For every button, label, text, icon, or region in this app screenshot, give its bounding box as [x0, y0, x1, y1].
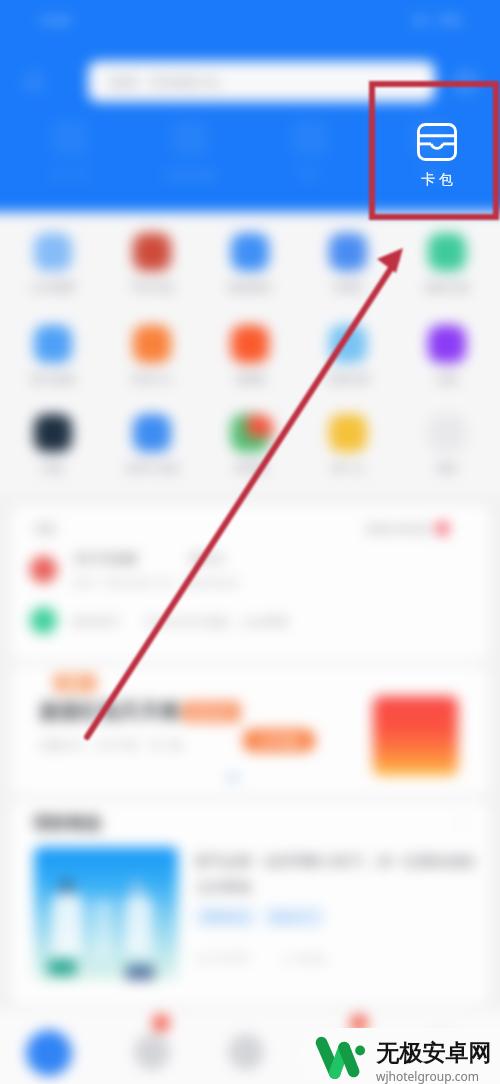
staticText: 饿了么 [332, 461, 365, 475]
staticText: 新手必看！这些理财小技巧，你一定要知道的几件事项 [195, 853, 475, 897]
staticText: 搜索 扫码领红包 [88, 72, 219, 91]
staticText: 无极安卓网 [376, 1039, 491, 1068]
staticText: 转账 [42, 461, 64, 475]
staticText: 手机充值 [130, 280, 174, 294]
staticText: 5G 70% [412, 11, 462, 29]
button[interactable]: 淘票票 [205, 414, 295, 475]
button[interactable]: 信用卡还款 [107, 414, 197, 475]
button[interactable]: 蚂蚁森林 [205, 233, 295, 294]
button[interactable]: Menu [22, 70, 46, 94]
staticText: 信用卡还款 [125, 461, 180, 475]
staticText: 医疗健康 [31, 372, 75, 386]
button[interactable]: 卡包 [380, 120, 480, 181]
button[interactable]: 市民中心 [107, 325, 197, 386]
button[interactable]: 付钱/收款 [140, 120, 240, 182]
button[interactable]: Friends [228, 1034, 264, 1070]
button[interactable]: 更多 [402, 414, 492, 475]
staticText: 蚂蚁庄园 [425, 280, 469, 294]
staticText: 花呗 [436, 372, 458, 386]
staticText: 最高888 [189, 704, 234, 720]
button[interactable]: Profile [452, 68, 480, 96]
button[interactable]: 转账 [8, 414, 98, 475]
button[interactable]: 医疗健康 [8, 325, 98, 386]
button[interactable]: 扫一扫 [20, 120, 120, 181]
staticText: 芝麻信用 [326, 372, 370, 386]
staticText: 市民中心 [130, 372, 174, 386]
staticText: 生活缴费 [31, 280, 75, 294]
staticText: 消费红包 天天可领 无门槛 [39, 737, 182, 752]
staticText: 支付宝提醒 09:12 [73, 549, 224, 567]
staticText: 超值红包天天领 [39, 699, 179, 724]
button[interactable]: 生活缴费 [8, 233, 98, 294]
button[interactable]: 余额宝 [303, 233, 393, 294]
button[interactable]: 限时 [11, 666, 489, 795]
button[interactable]: Finance [134, 1034, 170, 1070]
button[interactable]: Card package [407, 123, 467, 188]
staticText: 理财知识 [203, 910, 247, 924]
button[interactable]: Me [330, 1034, 366, 1070]
staticText: 余额宝 [332, 280, 365, 294]
button[interactable]: 手机充值 [107, 233, 197, 294]
staticText: 账单助手 本月支出已更新，点击查看 [73, 613, 289, 629]
button[interactable]: Account [424, 1034, 460, 1070]
staticText: 基金入门 [272, 910, 316, 924]
button[interactable]: 花呗 [402, 325, 492, 386]
button[interactable]: 立即领取 [255, 733, 303, 748]
button[interactable]: 出行 [260, 120, 360, 181]
staticText: 卡 包 [421, 169, 453, 188]
button[interactable]: 饿了么 [303, 414, 393, 475]
button[interactable]: 搜索 扫码领红包 [88, 61, 435, 102]
staticText: 立即领取 [255, 733, 303, 748]
staticText: 消费券 [234, 372, 267, 386]
staticText: 卡包 [418, 166, 442, 181]
staticText: 您有一笔待付款订单，请及时处理 [73, 576, 238, 590]
button[interactable]: 芝麻信用 [303, 325, 393, 386]
staticText: 14:06 [38, 11, 72, 29]
staticText: 淘票票 [234, 461, 267, 475]
staticText: 消息 [33, 521, 57, 536]
button[interactable]: Home [26, 1030, 72, 1076]
staticText: 限时 [64, 676, 86, 690]
button[interactable]: 消费券 [205, 325, 295, 386]
staticText: 理财精选 [33, 813, 101, 834]
button[interactable]: 蚂蚁庄园 [402, 233, 492, 294]
staticText: wjhotelgroup.com [376, 1068, 480, 1084]
staticText: 蚂蚁森林 [228, 280, 272, 294]
